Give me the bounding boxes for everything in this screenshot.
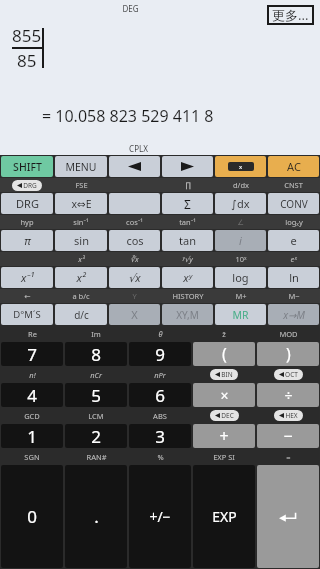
button[interactable]: π	[1, 230, 53, 251]
staticText: M−	[288, 291, 300, 301]
staticText: xʸ	[183, 270, 192, 285]
button[interactable]: √x	[109, 267, 160, 288]
staticText: i	[239, 233, 242, 248]
staticText: AC	[287, 159, 301, 174]
staticText: d/dx	[233, 180, 249, 190]
button[interactable]: 8	[65, 342, 127, 366]
staticText: 更多...	[272, 6, 309, 24]
button[interactable]: )	[257, 342, 319, 366]
staticText: ∏	[185, 181, 191, 190]
staticText: 855	[12, 24, 42, 47]
staticText: 9	[155, 343, 165, 366]
button[interactable]: −	[257, 424, 319, 448]
button[interactable]: Delete	[215, 156, 266, 177]
button[interactable]: sin	[55, 230, 107, 251]
button[interactable]: +/−	[129, 465, 191, 568]
staticText: cos⁻¹	[126, 217, 143, 227]
button[interactable]: x→M	[268, 304, 319, 325]
staticText: 7	[27, 343, 37, 366]
staticText: ABS	[153, 411, 167, 421]
staticText: BIN	[221, 370, 233, 379]
button[interactable]: X	[109, 304, 160, 325]
staticText: ∛x	[130, 254, 139, 264]
staticText: tan⁻¹	[179, 217, 196, 227]
staticText: Σ	[184, 196, 191, 212]
button[interactable]: 4	[1, 383, 63, 407]
staticText: CPLX	[129, 143, 148, 154]
button[interactable]: D°M´S	[1, 304, 53, 325]
staticText: LCM	[88, 411, 104, 421]
button[interactable]: 5	[65, 383, 127, 407]
button[interactable]: 9	[129, 342, 191, 366]
button[interactable]: MR	[215, 304, 266, 325]
button[interactable]: 2	[65, 424, 127, 448]
staticText: %	[157, 452, 164, 462]
button[interactable]: cos	[109, 230, 160, 251]
staticText: =	[286, 452, 291, 462]
staticText: MENU	[65, 160, 97, 174]
staticText: 0	[27, 505, 37, 528]
button[interactable]: MENU	[55, 156, 107, 177]
staticText: EXP SI	[213, 452, 235, 462]
button[interactable]: i	[215, 230, 266, 251]
button[interactable]: EXP	[193, 465, 255, 568]
staticText: 10ˣ	[235, 254, 247, 264]
button[interactable]: SHIFT	[1, 156, 53, 177]
button[interactable]: 1	[1, 424, 63, 448]
staticText: 4	[27, 384, 37, 407]
staticText: d/c	[74, 308, 89, 322]
staticText: sin⁻¹	[73, 217, 89, 227]
button[interactable]: blank	[109, 193, 160, 214]
button[interactable]: x⇔E	[55, 193, 107, 214]
button[interactable]: ln	[268, 267, 319, 288]
staticText: CONV	[280, 197, 308, 211]
button[interactable]: DRG	[1, 193, 53, 214]
button[interactable]: XY,M	[162, 304, 213, 325]
staticText: = 10.058 823 529 411 8	[42, 105, 214, 127]
staticText: XY,M	[176, 308, 199, 322]
staticText: x⁻¹	[21, 270, 34, 285]
staticText: FSE	[75, 180, 88, 190]
button[interactable]: AC	[268, 156, 319, 177]
button[interactable]: 0	[1, 465, 63, 568]
button[interactable]: x⁻¹	[1, 267, 53, 288]
button[interactable]: tan	[162, 230, 213, 251]
staticText: DRG	[16, 196, 39, 211]
button[interactable]: e	[268, 230, 319, 251]
button[interactable]: 3	[129, 424, 191, 448]
staticText: 85	[17, 49, 37, 72]
button[interactable]: Σ	[162, 193, 213, 214]
button[interactable]: ÷	[257, 383, 319, 407]
button[interactable]: xʸ	[162, 267, 213, 288]
staticText: DEC	[221, 411, 234, 420]
button[interactable]: ∫dx	[215, 193, 266, 214]
button[interactable]: Left	[109, 156, 160, 177]
button[interactable]: log	[215, 267, 266, 288]
button[interactable]: 更多...	[267, 5, 314, 25]
staticText: HEX	[285, 411, 298, 420]
staticText: +/−	[149, 507, 171, 526]
button[interactable]: +	[193, 424, 255, 448]
button[interactable]: .	[65, 465, 127, 568]
button[interactable]: Right	[162, 156, 213, 177]
button[interactable]: CONV	[268, 193, 319, 214]
button[interactable]: (	[193, 342, 255, 366]
staticText: x²	[76, 270, 86, 285]
button[interactable]: 7	[1, 342, 63, 366]
staticText: MOD	[279, 329, 298, 339]
staticText: tan	[179, 233, 196, 248]
button[interactable]: ×	[193, 383, 255, 407]
staticText: ʸ√y	[182, 254, 193, 264]
staticText: θ	[158, 329, 163, 339]
staticText: ln	[289, 270, 299, 285]
staticText: DEG	[122, 3, 139, 14]
button[interactable]: x²	[55, 267, 107, 288]
staticText: 6	[155, 384, 165, 407]
staticText: 2	[91, 425, 101, 448]
staticText: MR	[232, 308, 249, 322]
staticText: x	[239, 163, 243, 171]
button[interactable]: Enter	[257, 465, 319, 568]
button[interactable]: 6	[129, 383, 191, 407]
staticText: D°M´S	[13, 308, 41, 321]
button[interactable]: d/c	[55, 304, 107, 325]
